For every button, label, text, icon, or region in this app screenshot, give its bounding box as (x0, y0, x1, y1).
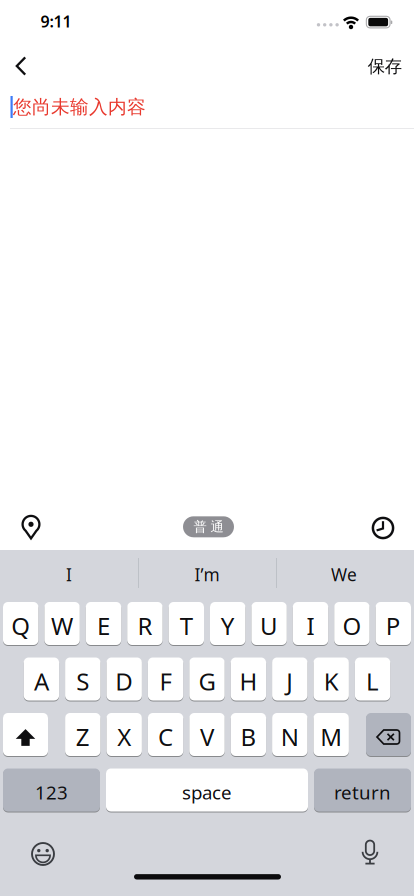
button[interactable]: G (189, 656, 225, 701)
staticText: J (286, 665, 293, 697)
staticText: T (180, 610, 193, 642)
staticText: P (386, 610, 401, 642)
staticText: D (115, 665, 133, 697)
staticText: X (117, 721, 131, 753)
staticText: A (34, 665, 49, 697)
button[interactable]: return (314, 767, 411, 812)
staticText: Q (11, 610, 30, 642)
button[interactable]: C (148, 712, 183, 757)
button[interactable]: Y (210, 601, 245, 646)
button[interactable]: H (231, 656, 266, 701)
button[interactable]: X (106, 712, 142, 757)
staticText: H (239, 665, 257, 697)
button[interactable]: 123 (3, 767, 100, 812)
button[interactable]: Emoji (21, 832, 65, 876)
staticText: C (158, 721, 173, 753)
button[interactable]: Z (65, 712, 100, 757)
staticText: Z (76, 721, 90, 753)
button[interactable]: K (313, 656, 349, 701)
button[interactable]: Back (0, 44, 43, 88)
staticText: N (281, 721, 299, 753)
staticText: B (240, 721, 256, 753)
button[interactable]: Location (9, 505, 53, 549)
button[interactable]: R (127, 601, 163, 646)
button[interactable]: E (86, 601, 121, 646)
button[interactable]: D (106, 656, 142, 701)
button[interactable]: Q (3, 601, 38, 646)
button[interactable]: N (272, 712, 307, 757)
staticText: L (366, 665, 379, 697)
button[interactable]: P (376, 601, 411, 646)
staticText: I (306, 610, 314, 642)
staticText: 普 通 (193, 519, 223, 535)
staticText: M (320, 721, 342, 753)
button[interactable]: We (279, 552, 409, 596)
button[interactable]: space (106, 767, 308, 812)
staticText: I (66, 563, 72, 586)
button[interactable]: History (361, 506, 405, 550)
staticText: return (334, 780, 391, 805)
button[interactable]: O (334, 601, 370, 646)
button[interactable]: M (313, 712, 349, 757)
staticText: Y (221, 610, 235, 642)
button[interactable]: I’m (142, 552, 272, 596)
button[interactable]: Delete (366, 712, 411, 757)
button[interactable]: A (24, 656, 59, 701)
button[interactable]: I (293, 601, 328, 646)
staticText: G (198, 665, 215, 697)
button[interactable]: 普 通 (178, 507, 238, 547)
staticText: 9:11 (40, 11, 71, 32)
button[interactable]: S (65, 656, 100, 701)
staticText: V (200, 721, 214, 753)
staticText: 123 (35, 780, 68, 805)
button[interactable]: T (169, 601, 204, 646)
button[interactable]: J (272, 656, 307, 701)
button[interactable]: B (231, 712, 266, 757)
button[interactable]: V (189, 712, 225, 757)
button[interactable]: U (251, 601, 287, 646)
button[interactable]: 保存 (355, 44, 414, 88)
staticText: 保存 (368, 56, 402, 77)
button[interactable]: F (148, 656, 183, 701)
button[interactable]: I (4, 552, 134, 596)
staticText: U (260, 610, 278, 642)
staticText: 您尚未输入内容 (13, 95, 146, 118)
staticText: R (137, 610, 152, 642)
staticText: F (160, 665, 172, 697)
staticText: We (331, 563, 357, 586)
staticText: K (324, 665, 339, 697)
button[interactable]: Dictation (348, 831, 392, 875)
staticText: W (51, 610, 73, 642)
staticText: O (342, 610, 361, 642)
button[interactable]: W (44, 601, 80, 646)
button[interactable]: Shift (3, 712, 48, 757)
staticText: I’m (194, 563, 219, 586)
staticText: E (97, 610, 110, 642)
staticText: S (76, 665, 89, 697)
staticText: space (182, 780, 232, 805)
button[interactable]: L (355, 656, 390, 701)
